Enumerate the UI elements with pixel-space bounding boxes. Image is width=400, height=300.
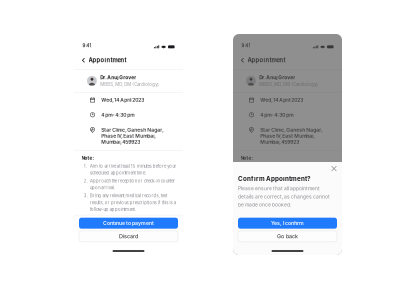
button[interactable]: Continue to payment [238, 218, 337, 229]
staticText: details are correct, as changes cannot [238, 194, 330, 200]
button[interactable]: Continue to payment [79, 218, 178, 229]
staticText: Bring any relevant medical records, test… [249, 193, 335, 212]
staticText: Go back [277, 233, 298, 240]
button[interactable]: Back [239, 55, 246, 65]
staticText: Appointment [88, 57, 126, 64]
staticText: Aim to arrive at least 15 minutes before… [90, 164, 176, 176]
staticText: Continue to payment [262, 220, 313, 226]
staticText: Dr. Anuj Grover [259, 75, 295, 80]
staticText: Aim to arrive at least 15 minutes before… [249, 164, 335, 176]
staticText: Discard [278, 233, 297, 240]
staticText: MBBS, MD, DM (Cardiology) [100, 82, 159, 87]
staticText: Dr. Anuj Grover [100, 75, 136, 80]
staticText: Please ensure that all appointment [238, 185, 320, 191]
staticText: MBBS, MD, DM (Cardiology) [259, 82, 318, 87]
staticText: be made once booked. [238, 202, 291, 208]
staticText: Approach the reception or check-in count… [249, 178, 334, 190]
staticText: 2. [84, 178, 88, 184]
staticText: Star Clinic, Ganesh Nagar, Phase IV, Eas… [101, 127, 164, 145]
staticText: Wed, 14 April 2023 [260, 97, 303, 103]
button[interactable]: Back [80, 55, 87, 65]
button[interactable]: Yes, I confirm [238, 218, 337, 229]
staticText: Approach the reception or check-in count… [90, 178, 175, 190]
staticText: 9:41 [241, 43, 250, 48]
staticText: Note: [81, 155, 94, 161]
staticText: Continue to payment [103, 220, 154, 226]
staticText: 1. [84, 164, 87, 169]
button[interactable]: Discard [79, 231, 178, 242]
staticText: 4 pm- 4:30 pm [260, 112, 293, 118]
staticText: Appointment [247, 57, 285, 64]
staticText: Star Clinic, Ganesh Nagar, Phase IV, Eas… [260, 127, 323, 145]
button[interactable]: Close [330, 164, 338, 173]
staticText: Yes, I confirm [271, 220, 304, 226]
button[interactable]: Go back [238, 231, 337, 242]
staticText: 3. [243, 193, 247, 198]
staticText: 9:41 [82, 43, 91, 48]
staticText: Confirm Appointment? [238, 175, 310, 182]
staticText: 2. [243, 178, 247, 184]
staticText: Bring any relevant medical records, test… [90, 193, 176, 212]
staticText: Discard [119, 233, 138, 240]
staticText: 4 pm- 4:30 pm [101, 112, 134, 118]
staticText: Note: [241, 155, 254, 161]
button[interactable]: Discard [238, 231, 337, 242]
staticText: Wed, 14 April 2023 [101, 97, 144, 103]
staticText: 3. [84, 193, 88, 198]
